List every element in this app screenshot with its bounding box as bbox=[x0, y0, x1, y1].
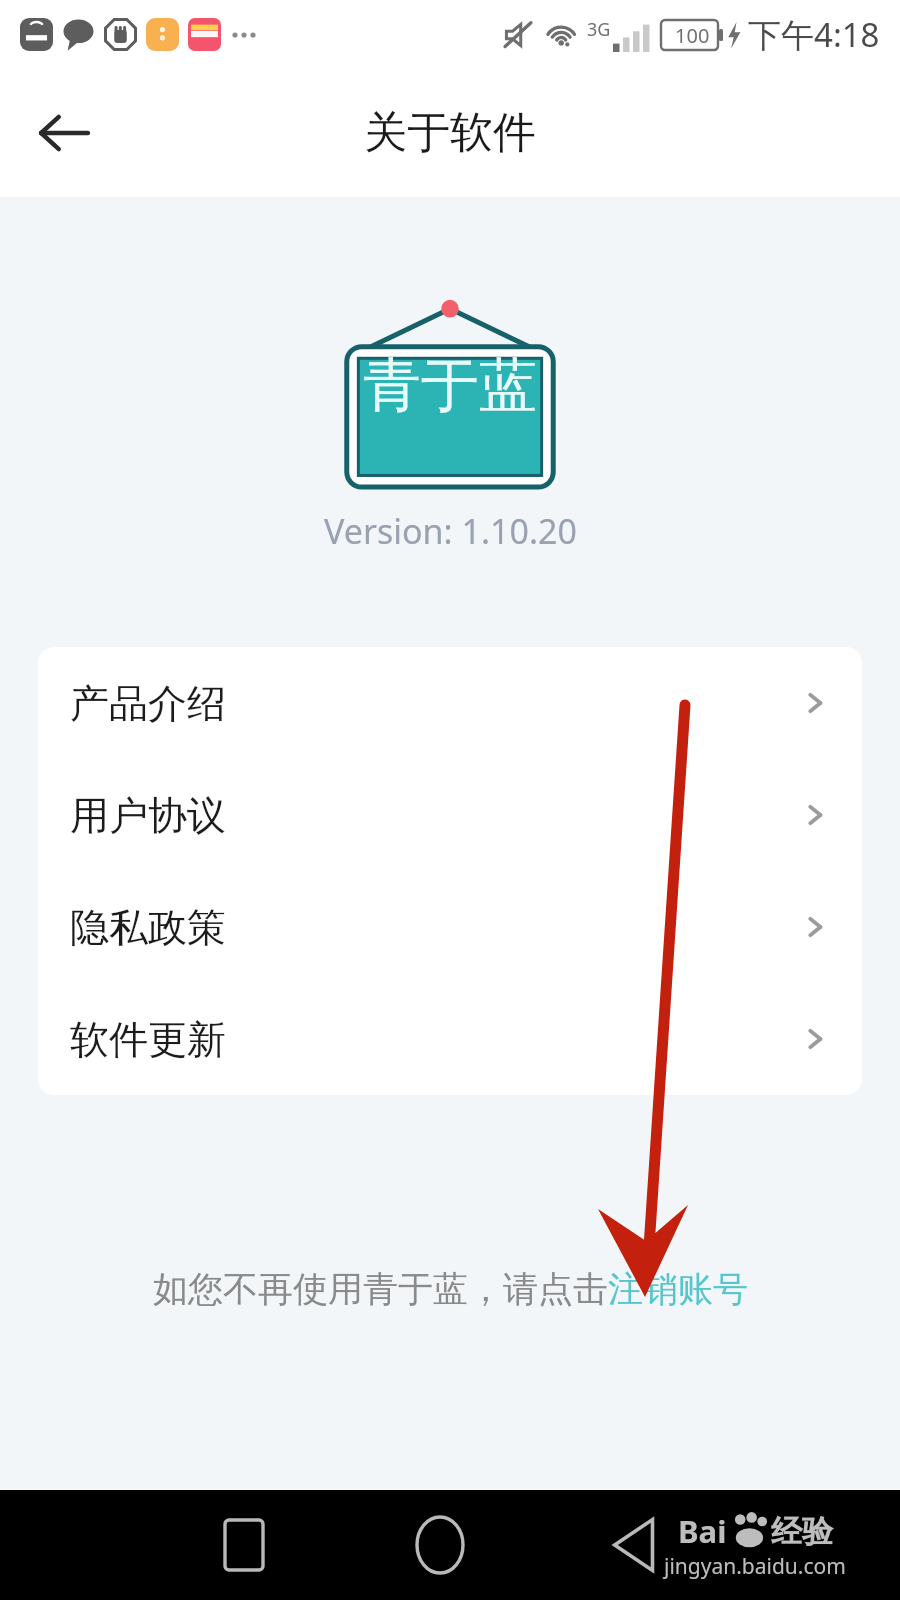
button[interactable]: 软件更新 bbox=[38, 983, 862, 1095]
staticText: 下午4:18 bbox=[748, 12, 880, 57]
staticText: Bai bbox=[678, 1510, 727, 1552]
button[interactable]: 返回 bbox=[22, 91, 106, 175]
staticText: 100 bbox=[675, 22, 710, 49]
staticText: 如您不再使用青于蓝，请点击注销账号 bbox=[153, 1267, 748, 1311]
staticText: jingyan.baidu.com bbox=[664, 1552, 846, 1581]
staticText: 经验 bbox=[771, 1512, 833, 1551]
staticText: 软件更新 bbox=[70, 1015, 226, 1064]
button[interactable]: 产品介绍 bbox=[38, 647, 862, 759]
button[interactable]: 隐私政策 bbox=[38, 871, 862, 983]
staticText: 用户协议 bbox=[70, 791, 226, 840]
staticText: 3G bbox=[587, 17, 611, 42]
staticText: Version: 1.10.20 bbox=[324, 508, 577, 554]
staticText: 关于软件 bbox=[364, 106, 536, 160]
button[interactable]: 主屏幕 bbox=[400, 1505, 480, 1585]
staticText: 青于蓝 bbox=[363, 349, 537, 422]
button[interactable]: 返回 bbox=[598, 1509, 670, 1581]
staticText: 产品介绍 bbox=[70, 679, 226, 728]
button[interactable]: 如您不再使用青于蓝，请点击注销账号 bbox=[145, 1261, 756, 1317]
button[interactable]: 最近任务 bbox=[208, 1509, 280, 1581]
staticText: 隐私政策 bbox=[70, 903, 226, 952]
button[interactable]: 用户协议 bbox=[38, 759, 862, 871]
